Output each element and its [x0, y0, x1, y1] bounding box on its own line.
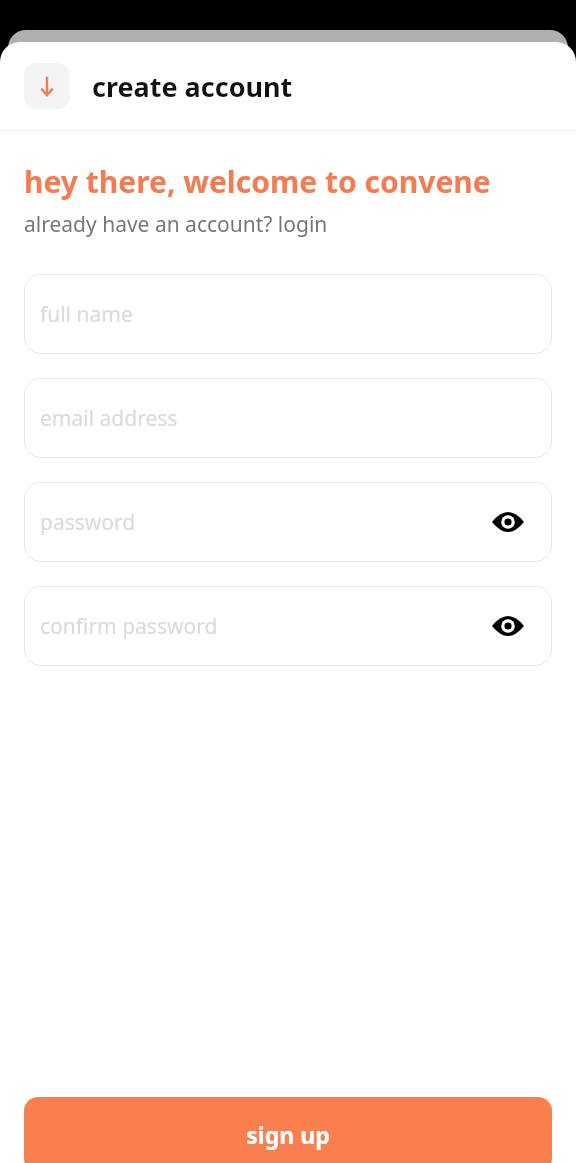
- button[interactable]: Back: [24, 63, 70, 109]
- staticText: full name: [40, 300, 133, 329]
- staticText: create account: [92, 68, 293, 105]
- button[interactable]: password: [24, 482, 552, 562]
- staticText: sign up: [246, 1119, 330, 1150]
- button[interactable]: confirm password: [24, 586, 552, 666]
- button[interactable]: email address: [24, 378, 552, 458]
- staticText: email address: [40, 404, 178, 433]
- button[interactable]: full name: [24, 274, 552, 354]
- button[interactable]: sign up: [24, 1097, 552, 1163]
- button[interactable]: already have an account? login: [24, 210, 328, 239]
- button[interactable]: Show password: [488, 502, 528, 542]
- button[interactable]: Show password: [488, 606, 528, 646]
- staticText: hey there, welcome to convene: [24, 161, 552, 202]
- staticText: password: [40, 508, 136, 537]
- staticText: confirm password: [40, 612, 218, 641]
